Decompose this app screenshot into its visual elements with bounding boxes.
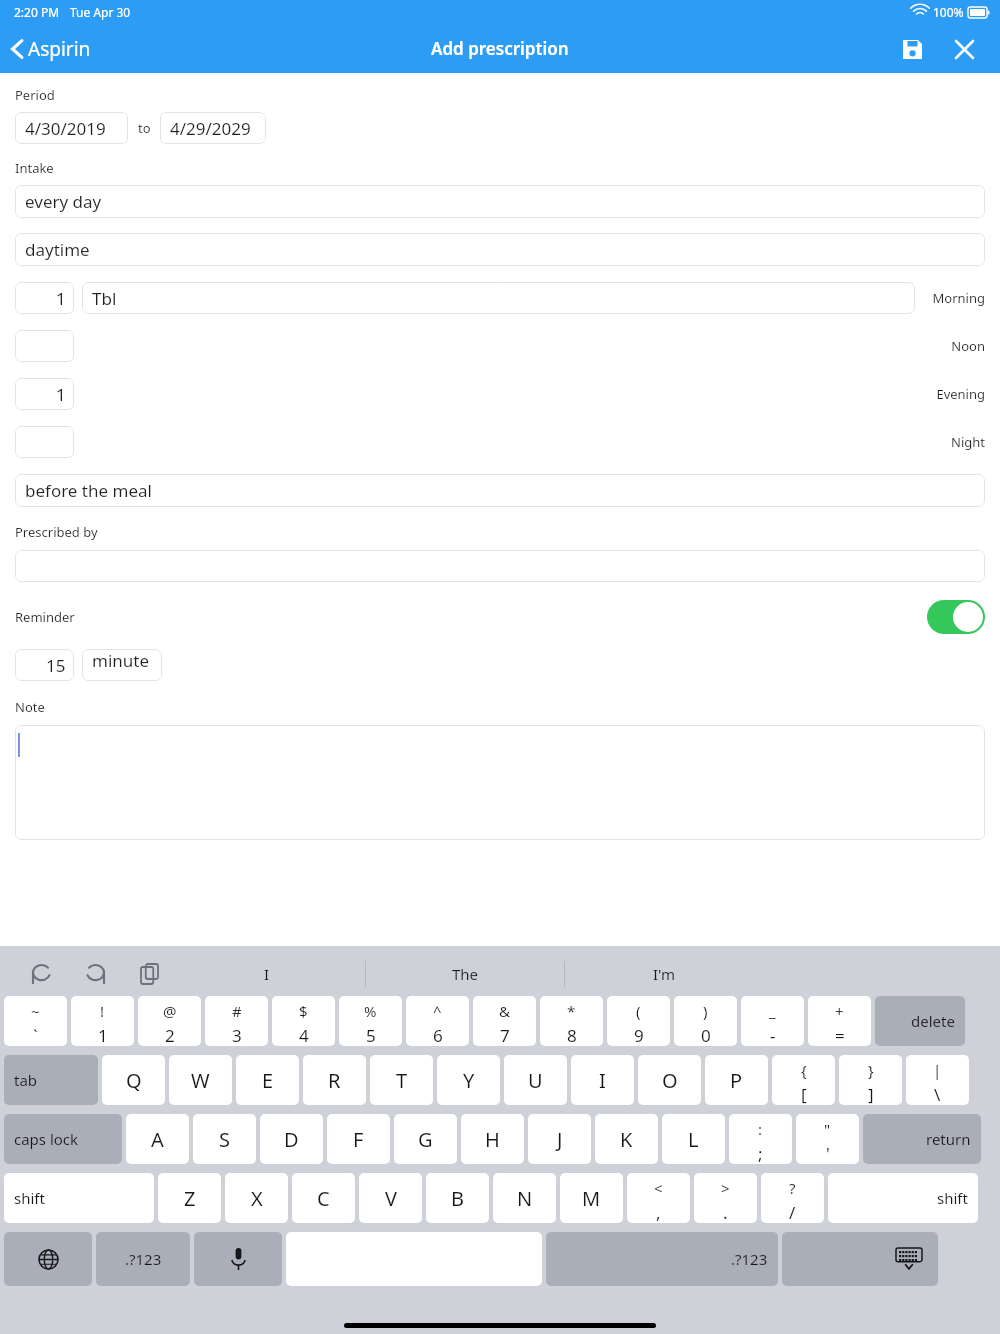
button[interactable]: < (627, 1173, 690, 1223)
button[interactable]: .?123 (96, 1232, 190, 1286)
button[interactable]: Reminder toggle (927, 600, 985, 634)
button[interactable]: Aspirin (0, 27, 99, 71)
button[interactable]: Hide keyboard (782, 1232, 938, 1286)
button[interactable] (15, 330, 74, 362)
button[interactable]: U (504, 1055, 567, 1105)
staticText: ] (868, 1083, 874, 1105)
button[interactable]: I (571, 1055, 634, 1105)
button[interactable]: I'm (565, 952, 763, 996)
button[interactable]: T (370, 1055, 433, 1105)
staticText: > (721, 1178, 730, 1198)
button[interactable]: K (595, 1114, 658, 1164)
button[interactable]: Z (158, 1173, 221, 1223)
button[interactable]: return (863, 1114, 981, 1164)
button[interactable]: ! (71, 996, 134, 1046)
button[interactable]: Dictate (194, 1232, 282, 1286)
button[interactable]: Save (890, 27, 934, 71)
staticText: ` (33, 1024, 38, 1046)
button[interactable]: before the meal (15, 474, 985, 507)
button[interactable]: D (260, 1114, 323, 1164)
button[interactable]: Y (437, 1055, 500, 1105)
button[interactable]: $ (272, 996, 335, 1046)
button[interactable]: : (729, 1114, 792, 1164)
button[interactable]: ) (674, 996, 737, 1046)
staticText: . (723, 1201, 728, 1223)
button[interactable]: The (366, 952, 564, 996)
button[interactable]: > (694, 1173, 757, 1223)
staticText: every day (25, 190, 102, 213)
button[interactable]: " (796, 1114, 859, 1164)
button[interactable]: shift (828, 1173, 978, 1223)
button[interactable]: minutes (82, 649, 162, 681)
button[interactable]: + (808, 996, 871, 1046)
button[interactable]: A (126, 1114, 189, 1164)
staticText: F (353, 1126, 364, 1153)
button[interactable]: C (292, 1173, 355, 1223)
staticText: 4 (299, 1024, 309, 1046)
button[interactable]: R (303, 1055, 366, 1105)
button[interactable]: 4/30/2019 (15, 112, 128, 144)
button[interactable]: @ (138, 996, 201, 1046)
button[interactable]: H (461, 1114, 524, 1164)
button[interactable]: tab (4, 1055, 98, 1105)
button[interactable]: G (394, 1114, 457, 1164)
other: Hide keyboard (782, 1232, 922, 1286)
button[interactable]: Undo (22, 955, 60, 993)
button[interactable]: } (839, 1055, 902, 1105)
button[interactable]: Tbl (82, 282, 915, 314)
button[interactable]: delete (875, 996, 965, 1046)
button[interactable]: O (638, 1055, 701, 1105)
button[interactable]: caps lock (4, 1114, 122, 1164)
button[interactable]: ^ (406, 996, 469, 1046)
button[interactable]: J (528, 1114, 591, 1164)
staticText: D (284, 1126, 299, 1153)
button[interactable]: | (906, 1055, 969, 1105)
button[interactable]: N (493, 1173, 556, 1223)
button[interactable]: % (339, 996, 402, 1046)
button[interactable] (15, 725, 985, 840)
button[interactable]: P (705, 1055, 768, 1105)
button[interactable]: Globe (4, 1232, 92, 1286)
button[interactable]: shift (4, 1173, 154, 1223)
staticText: Period (15, 86, 55, 104)
button[interactable]: every day (15, 185, 985, 218)
button[interactable]: ( (607, 996, 670, 1046)
button[interactable]: Paste (130, 955, 168, 993)
button[interactable]: { (772, 1055, 835, 1105)
button[interactable]: B (426, 1173, 489, 1223)
staticText: B (451, 1185, 464, 1212)
button[interactable]: 1 (15, 282, 74, 314)
button[interactable] (15, 550, 985, 582)
button[interactable]: .?123 (546, 1232, 778, 1286)
button[interactable]: 15 (15, 649, 74, 681)
staticText: .?123 (731, 1249, 768, 1269)
button[interactable]: Close (942, 27, 986, 71)
button[interactable]: L (662, 1114, 725, 1164)
button[interactable]: V (359, 1173, 422, 1223)
staticText: @ (163, 1001, 177, 1021)
staticText: K (620, 1126, 633, 1153)
staticText: C (317, 1185, 330, 1212)
button[interactable]: ? (761, 1173, 824, 1223)
button[interactable]: M (560, 1173, 623, 1223)
button[interactable]: * (540, 996, 603, 1046)
button[interactable]: & (473, 996, 536, 1046)
button[interactable]: I (168, 952, 365, 996)
button[interactable]: S (193, 1114, 256, 1164)
button[interactable]: # (205, 996, 268, 1046)
button[interactable]: Q (102, 1055, 165, 1105)
button[interactable]: F (327, 1114, 390, 1164)
button[interactable]: Redo (76, 955, 114, 993)
other: Globe (4, 1232, 92, 1286)
button[interactable]: W (169, 1055, 232, 1105)
staticText: S (219, 1126, 230, 1153)
button[interactable]: ~ (4, 996, 67, 1046)
button[interactable]: X (225, 1173, 288, 1223)
button[interactable]: 4/29/2029 (160, 112, 266, 144)
button[interactable]: 1 (15, 378, 74, 410)
button[interactable] (15, 426, 74, 458)
button[interactable]: E (236, 1055, 299, 1105)
button[interactable]: _ (741, 996, 804, 1046)
button[interactable]: daytime (15, 233, 985, 266)
